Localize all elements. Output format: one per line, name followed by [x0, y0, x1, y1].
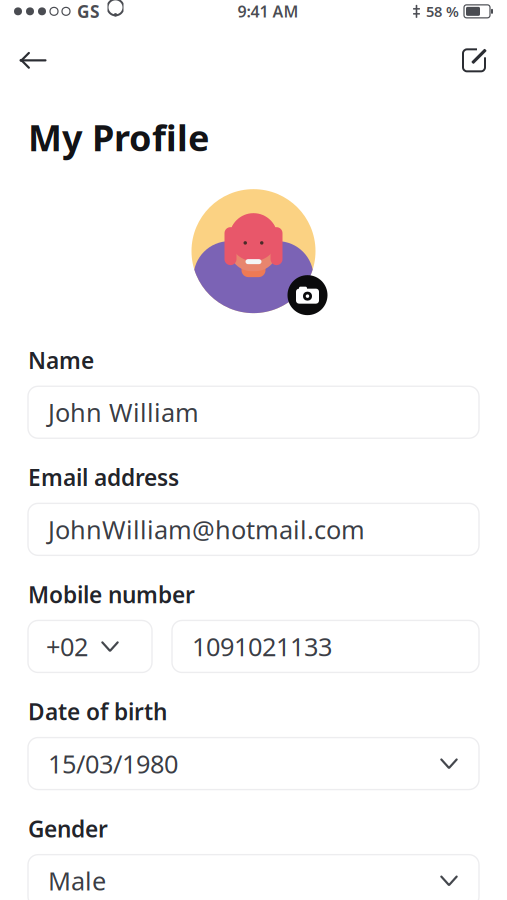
- staticText: JohnWilliam@hotmail.com: [48, 512, 365, 546]
- staticText: Name: [28, 345, 94, 375]
- staticText: 1091021133: [192, 630, 332, 663]
- staticText: Mobile number: [28, 579, 195, 609]
- staticText: Male: [48, 864, 106, 897]
- staticText: My Profile: [28, 113, 209, 161]
- staticText: 9:41 AM: [237, 1, 298, 22]
- button[interactable]: 15/03/1980: [28, 738, 479, 790]
- staticText: +02: [46, 630, 88, 663]
- button[interactable]: Edit profile: [451, 37, 497, 83]
- staticText: Email address: [28, 462, 179, 492]
- staticText: Gender: [28, 814, 108, 844]
- staticText: GS: [77, 0, 100, 23]
- staticText: 15/03/1980: [48, 747, 178, 780]
- staticText: John William: [48, 395, 199, 429]
- staticText: Date of birth: [28, 696, 167, 727]
- button[interactable]: JohnWilliam@hotmail.com: [28, 503, 479, 555]
- button[interactable]: +02: [28, 620, 152, 672]
- button[interactable]: John William: [28, 386, 479, 438]
- button[interactable]: 1091021133: [172, 620, 479, 672]
- staticText: 58 %: [426, 2, 459, 21]
- button[interactable]: Male: [28, 855, 479, 900]
- button[interactable]: Change profile photo: [287, 275, 327, 315]
- button[interactable]: Back: [10, 37, 56, 83]
